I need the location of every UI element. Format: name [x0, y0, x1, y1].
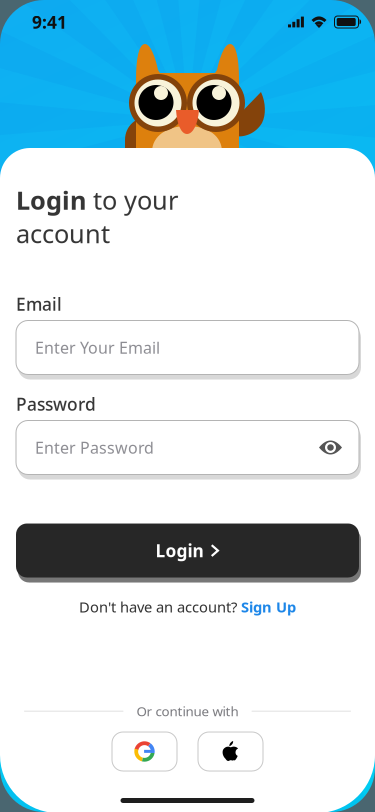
button[interactable]: Continue with Apple [198, 732, 263, 771]
staticText: Login [155, 539, 203, 562]
staticText: Sign Up [241, 597, 296, 616]
staticText: Login to your account [16, 183, 178, 250]
staticText: Password [16, 392, 96, 415]
button[interactable]: Login [16, 521, 359, 580]
staticText: Or continue with [136, 702, 238, 720]
staticText: 9:41 [32, 10, 67, 33]
staticText: Enter Password [35, 437, 154, 458]
button[interactable]: Continue with Google [112, 732, 177, 771]
staticText: Email [16, 292, 62, 315]
button[interactable]: Sign Up [241, 597, 296, 616]
staticText: Enter Your Email [35, 337, 160, 358]
staticText: Don't have an account? [79, 597, 241, 616]
